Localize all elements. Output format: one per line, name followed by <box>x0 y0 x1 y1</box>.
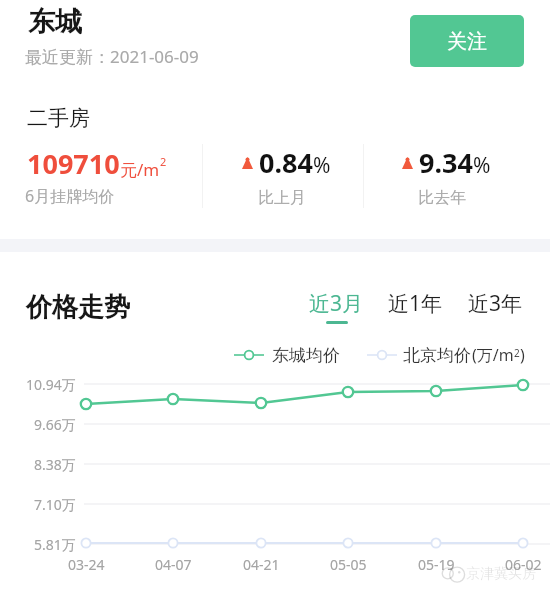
staticText: % <box>313 151 331 180</box>
staticText: 9.66万 <box>34 415 76 434</box>
staticText: 2 <box>160 154 167 169</box>
staticText: 04-07 <box>155 555 192 574</box>
staticText: 近3月 <box>309 289 364 318</box>
button[interactable]: 近1年 <box>388 289 443 318</box>
staticText: 关注 <box>447 29 487 54</box>
staticText: (万/m <box>472 344 514 366</box>
staticText: 05-05 <box>330 555 367 574</box>
staticText: 近3年 <box>468 289 523 318</box>
staticText: % <box>473 151 491 180</box>
staticText: 05-19 <box>418 555 455 574</box>
staticText: 元/m <box>120 158 160 181</box>
staticText: 京津冀买房 <box>466 565 536 583</box>
staticText: 东城 <box>28 5 82 39</box>
staticText: 比去年 <box>418 188 466 208</box>
staticText: 10.94万 <box>26 375 76 394</box>
staticText: 5.81万 <box>34 535 76 554</box>
button[interactable]: 0.84 <box>208 144 364 208</box>
staticText: 比上月 <box>258 188 306 208</box>
staticText: 东城均价 <box>272 345 340 366</box>
staticText: 6月挂牌均价 <box>25 185 115 207</box>
button[interactable]: 近3月 <box>309 289 364 324</box>
staticText: ) <box>520 344 525 366</box>
staticText: 04-21 <box>243 555 280 574</box>
staticText: 最近更新：2021-06-09 <box>25 45 199 68</box>
staticText: 06-02 <box>505 555 542 574</box>
staticText: 二手房 <box>27 105 90 131</box>
button[interactable]: 关注 <box>410 15 524 67</box>
staticText: 8.38万 <box>34 455 76 474</box>
staticText: 03-24 <box>68 555 105 574</box>
staticText: 价格走势 <box>26 291 130 324</box>
staticText: 9.34 <box>419 144 473 181</box>
button[interactable]: 近3年 <box>468 289 523 318</box>
staticText: 2 <box>514 346 520 360</box>
button[interactable]: 9.34 <box>368 144 524 208</box>
staticText: 近1年 <box>388 289 443 318</box>
staticText: 0.84 <box>259 144 313 181</box>
staticText: 北京均价 <box>403 345 471 366</box>
staticText: 109710 <box>27 145 120 182</box>
staticText: 7.10万 <box>34 495 76 514</box>
